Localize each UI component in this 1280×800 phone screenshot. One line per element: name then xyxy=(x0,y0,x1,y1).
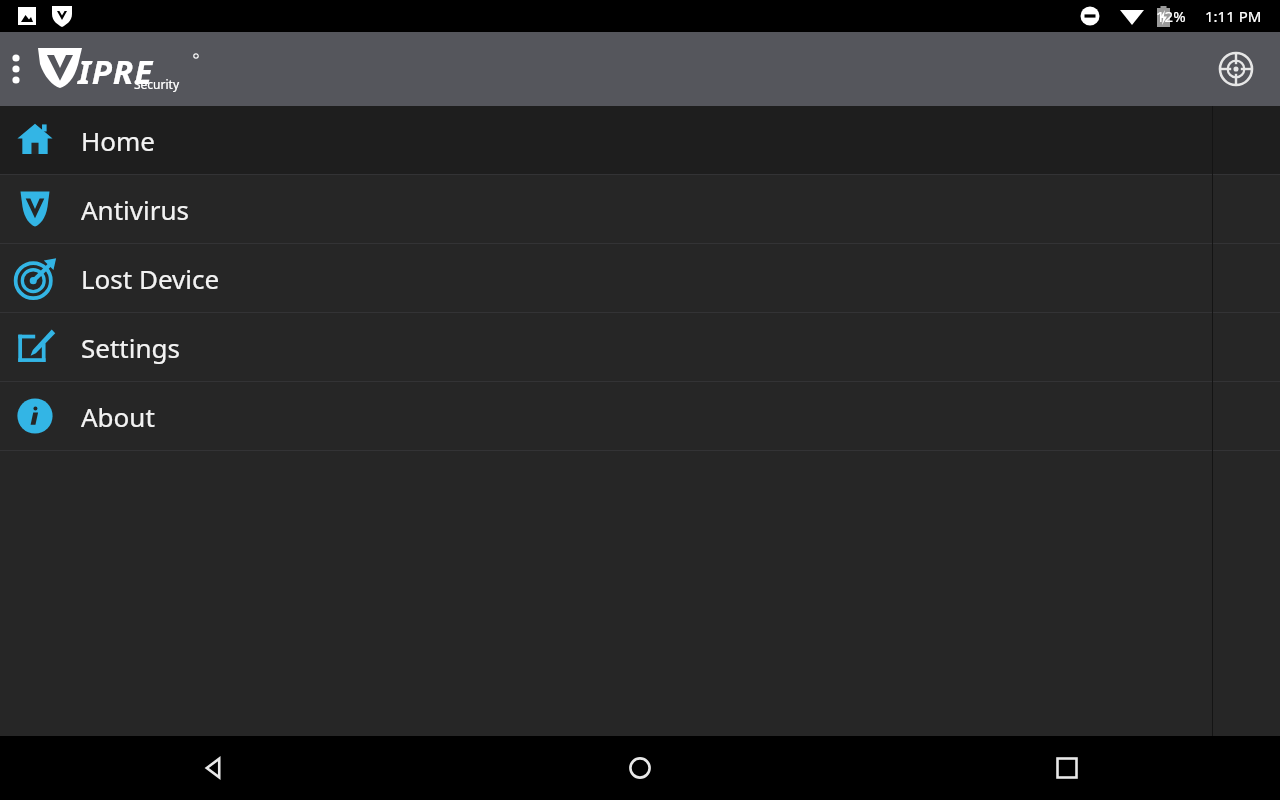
button[interactable]: Home xyxy=(0,106,1280,174)
button[interactable]: Home xyxy=(426,736,853,800)
staticText: Home xyxy=(81,123,155,158)
button[interactable]: More options xyxy=(0,32,32,106)
staticText: Lost Device xyxy=(81,261,220,296)
staticText: Antivirus xyxy=(81,192,189,227)
button[interactable]: Settings xyxy=(0,313,1280,381)
button[interactable]: Scan xyxy=(1212,45,1260,93)
staticText: About xyxy=(81,399,155,434)
staticText: 1:11 PM xyxy=(1205,6,1262,26)
staticText: Security xyxy=(134,76,180,92)
button[interactable]: Antivirus xyxy=(0,175,1280,243)
button[interactable]: About xyxy=(0,382,1280,450)
button[interactable]: Back xyxy=(0,736,426,800)
staticText: Settings xyxy=(81,330,180,365)
staticText: IPRE xyxy=(78,49,154,94)
button[interactable]: Lost Device xyxy=(0,244,1280,312)
button[interactable]: Recent apps xyxy=(853,736,1280,800)
staticText: 12% xyxy=(1156,6,1186,26)
